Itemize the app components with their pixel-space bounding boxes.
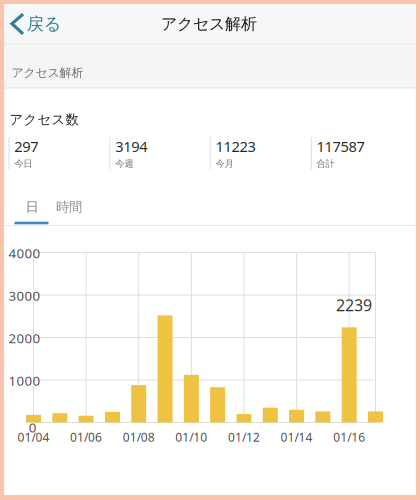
staticText: アクセス解析 bbox=[11, 65, 83, 80]
staticText: 0 bbox=[29, 418, 37, 436]
staticText: 4000 bbox=[9, 244, 41, 262]
staticText: 3000 bbox=[9, 287, 41, 304]
button[interactable]: 297 bbox=[14, 136, 106, 169]
staticText: 2000 bbox=[9, 329, 41, 347]
staticText: 01/08 bbox=[123, 429, 155, 445]
staticText: 今月 bbox=[215, 158, 233, 169]
staticText: 3194 bbox=[115, 136, 147, 156]
staticText: 01/14 bbox=[281, 429, 313, 445]
staticText: アクセス解析 bbox=[161, 14, 257, 34]
staticText: 日 bbox=[25, 199, 38, 215]
staticText: アクセス数 bbox=[9, 111, 78, 128]
button[interactable]: 11223 bbox=[215, 136, 307, 169]
staticText: 時間 bbox=[56, 199, 82, 215]
staticText: 01/10 bbox=[175, 429, 207, 445]
staticText: 11223 bbox=[215, 136, 255, 156]
button[interactable]: 3194 bbox=[115, 136, 207, 169]
staticText: 01/06 bbox=[70, 429, 102, 445]
staticText: 117587 bbox=[316, 136, 364, 156]
staticText: 1000 bbox=[9, 372, 41, 389]
button[interactable]: 117587 bbox=[316, 136, 408, 169]
staticText: 戻る bbox=[27, 13, 62, 35]
staticText: 今日 bbox=[14, 158, 32, 169]
button[interactable]: 時間 bbox=[47, 190, 91, 224]
staticText: 今週 bbox=[115, 158, 133, 169]
staticText: 2239 bbox=[336, 294, 372, 316]
staticText: 合計 bbox=[316, 158, 334, 169]
button[interactable]: 戻る bbox=[4, 4, 68, 43]
staticText: 01/16 bbox=[333, 429, 365, 445]
staticText: 01/12 bbox=[228, 429, 260, 445]
staticText: 297 bbox=[14, 136, 38, 156]
button[interactable]: 日 bbox=[15, 190, 49, 224]
staticText: 01/04 bbox=[17, 429, 49, 445]
